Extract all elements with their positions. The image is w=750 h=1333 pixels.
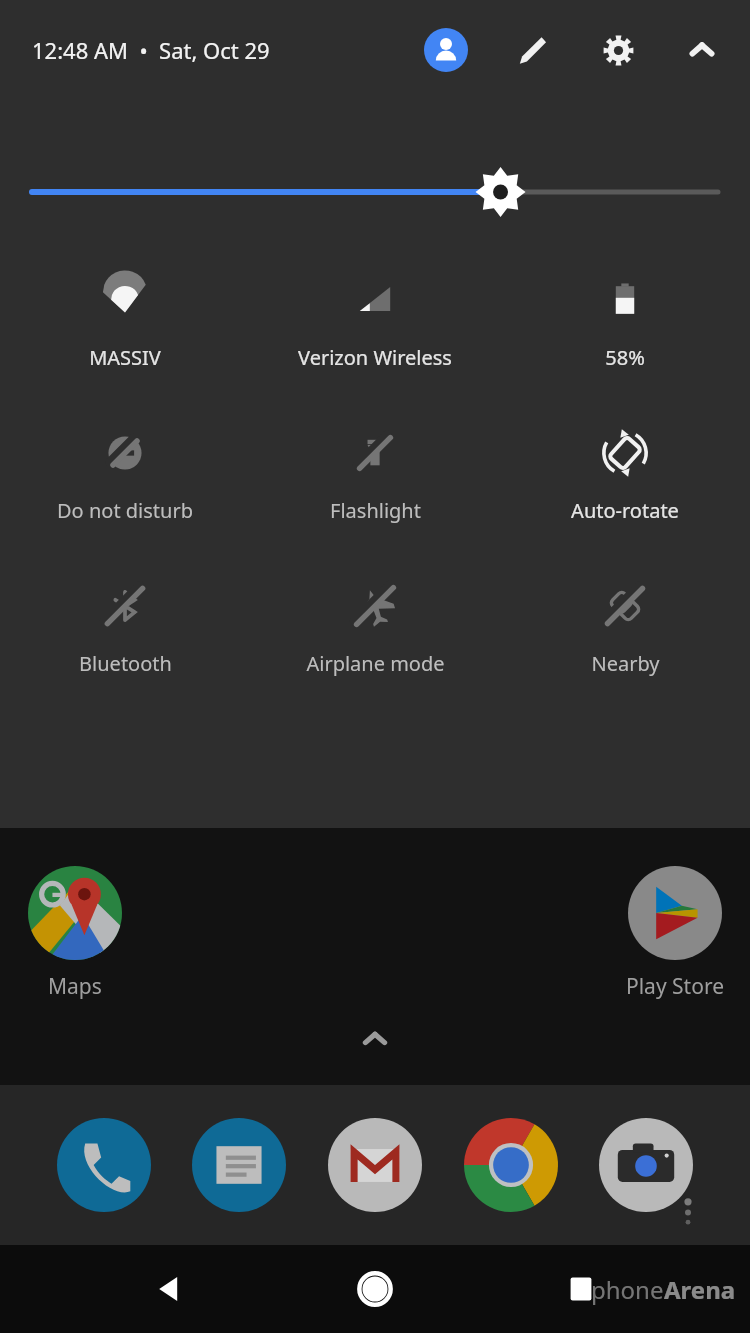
- button[interactable]: User account: [424, 28, 468, 72]
- staticText: Flashlight: [330, 497, 421, 524]
- button[interactable]: Maps: [0, 866, 150, 1001]
- button[interactable]: Nearby: [500, 574, 750, 681]
- staticText: Auto-rotate: [571, 497, 679, 524]
- button[interactable]: Auto-rotate: [500, 421, 750, 528]
- button[interactable]: Do not disturb: [0, 421, 250, 528]
- staticText: phone: [591, 1273, 664, 1306]
- button[interactable]: MASSIV: [0, 268, 250, 375]
- staticText: Play Store: [626, 972, 724, 1001]
- button[interactable]: Brightness: [32, 162, 718, 222]
- button[interactable]: Verizon Wireless: [250, 268, 500, 375]
- staticText: 12:48 AM • Sat, Oct 29: [32, 35, 270, 65]
- staticText: Bluetooth: [79, 650, 172, 677]
- button[interactable]: Collapse: [680, 28, 724, 72]
- staticText: Maps: [48, 972, 102, 1001]
- staticText: Verizon Wireless: [298, 344, 452, 371]
- staticText: Nearby: [591, 650, 660, 677]
- button[interactable]: Back: [134, 1253, 206, 1325]
- staticText: Do not disturb: [57, 497, 193, 524]
- button[interactable]: 58%: [500, 268, 750, 375]
- staticText: Airplane mode: [306, 650, 445, 677]
- button[interactable]: Phone: [54, 1115, 154, 1215]
- button[interactable]: Settings: [596, 28, 640, 72]
- button[interactable]: Home: [339, 1253, 411, 1325]
- button[interactable]: Gmail: [325, 1115, 425, 1215]
- button[interactable]: Messages: [189, 1115, 289, 1215]
- staticText: 58%: [605, 344, 645, 371]
- button[interactable]: Bluetooth: [0, 574, 250, 681]
- button[interactable]: Chrome: [461, 1115, 561, 1215]
- button[interactable]: Recent apps: [545, 1253, 617, 1325]
- button[interactable]: Airplane mode: [250, 574, 500, 681]
- button[interactable]: Edit tiles: [510, 28, 554, 72]
- staticText: Arena: [664, 1273, 736, 1306]
- button[interactable]: Camera: [596, 1115, 696, 1215]
- button[interactable]: Open app drawer: [351, 1015, 399, 1063]
- staticText: MASSIV: [89, 344, 161, 371]
- button[interactable]: Play Store: [600, 866, 750, 1001]
- button[interactable]: Flashlight: [250, 421, 500, 528]
